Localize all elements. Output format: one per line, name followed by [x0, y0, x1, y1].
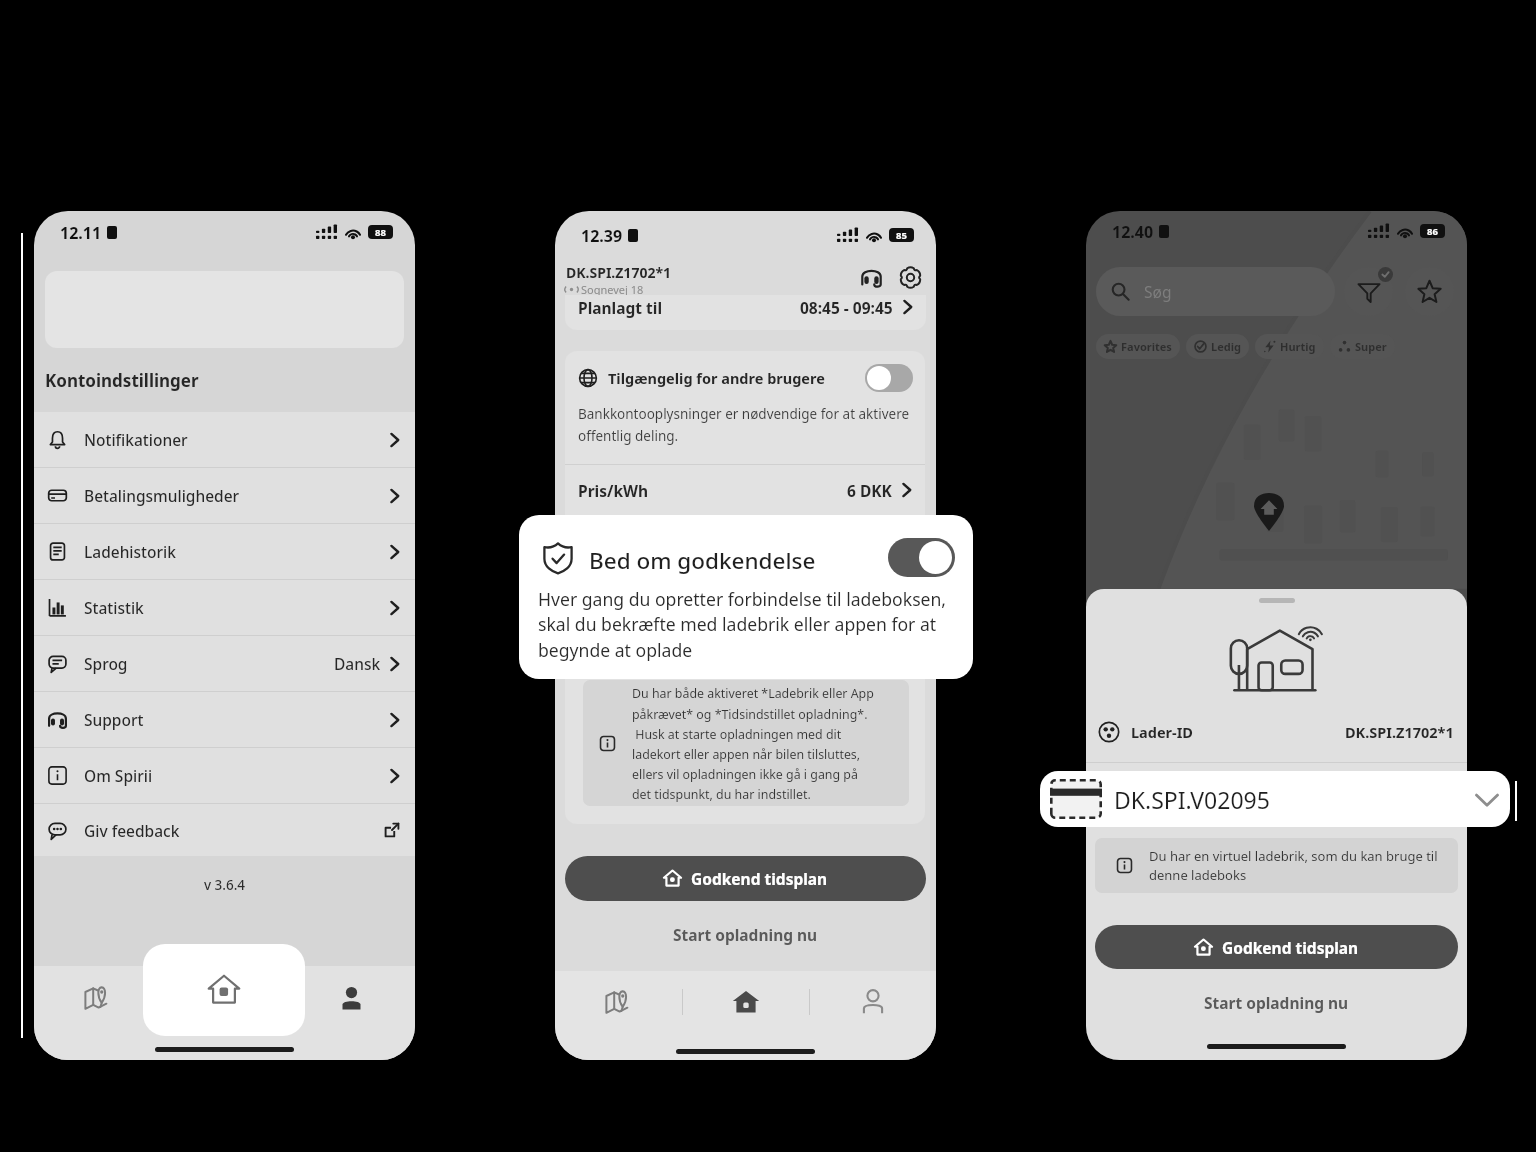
button[interactable]: Map	[34, 966, 161, 1030]
staticText: Dansk	[334, 653, 381, 674]
staticText: 08:45 - 09:45	[800, 297, 893, 318]
staticText: Hurtig	[1280, 339, 1316, 354]
staticText: DK.SPI.V02095	[1114, 784, 1270, 815]
button[interactable]: Select charge tag	[1040, 771, 1510, 827]
staticText: Kontoindstillinger	[45, 369, 199, 392]
staticText: Ladehistorik	[84, 541, 176, 562]
staticText: DK.SPI.Z1702*1	[1345, 722, 1454, 742]
button[interactable]: Ladehistorik	[34, 524, 415, 579]
button[interactable]: Betalingsmuligheder	[34, 468, 415, 523]
staticText: Ledig	[1211, 339, 1241, 354]
staticText: v 3.6.4	[34, 876, 415, 894]
staticText: Favorites	[1121, 339, 1172, 354]
button[interactable]: Super	[1330, 334, 1395, 359]
staticText: 88	[375, 226, 386, 239]
staticText: Pris/kWh	[578, 480, 649, 501]
staticText: Super	[1355, 339, 1387, 354]
staticText: Sprog	[84, 653, 128, 674]
staticText: Giv feedback	[84, 820, 180, 841]
staticText: Godkend tidsplan	[691, 868, 828, 889]
button[interactable]: Planlagt til	[565, 295, 926, 319]
staticText: Bed om godkendelse	[589, 545, 816, 576]
staticText: 12.11	[60, 222, 102, 242]
staticText: 85	[896, 229, 907, 242]
staticText: DK.SPI.Z1702*1	[566, 263, 671, 282]
staticText: Start opladning nu	[673, 924, 818, 945]
staticText: 86	[1427, 225, 1438, 238]
button[interactable]: Settings	[895, 262, 925, 292]
button[interactable]: Start opladning nu	[555, 917, 936, 951]
button[interactable]: Hurtig	[1255, 334, 1324, 359]
button[interactable]: Support	[856, 262, 886, 292]
button[interactable]: Favourites	[1405, 267, 1454, 316]
staticText: 12.40	[1112, 221, 1154, 241]
button[interactable]: Ledig	[1186, 334, 1249, 359]
button[interactable]: Godkend tidsplan	[565, 856, 926, 901]
button[interactable]: Filter	[1344, 267, 1393, 316]
button[interactable]: Notifikationer	[34, 412, 415, 467]
button[interactable]: Søg	[1096, 267, 1335, 316]
staticText: Du har både aktiveret *Ladebrik eller Ap…	[632, 685, 874, 802]
button[interactable]: Toggle	[865, 364, 913, 392]
staticText: Start opladning nu	[1204, 992, 1349, 1013]
staticText: Planlagt til	[578, 297, 663, 318]
staticText: Support	[84, 709, 144, 730]
staticText: Lader-ID	[1131, 722, 1193, 742]
staticText: Om Spirii	[84, 765, 153, 786]
button[interactable]: Home	[683, 971, 809, 1033]
button[interactable]: Om Spirii	[34, 748, 415, 803]
staticText: Du har en virtuel ladebrik, som du kan b…	[1149, 847, 1438, 884]
staticText: Betalingsmuligheder	[84, 485, 240, 506]
staticText: 12.39	[581, 225, 623, 245]
staticText: Bankkontooplysninger er nødvendige for a…	[578, 405, 910, 445]
staticText: Tilgængelig for andre brugere	[608, 368, 825, 388]
button[interactable]: Pris/kWh	[578, 465, 912, 515]
staticText: Sognevej 18	[581, 282, 644, 297]
staticText: Godkend tidsplan	[1222, 937, 1359, 958]
button[interactable]: Favorites	[1096, 334, 1180, 359]
button[interactable]: Support	[34, 692, 415, 747]
button[interactable]: Profile	[288, 966, 415, 1030]
staticText: 6 DKK	[847, 480, 892, 501]
button[interactable]: Start opladning nu	[1086, 987, 1467, 1017]
button[interactable]: Toggle approval	[888, 538, 955, 577]
button[interactable]: Statistik	[34, 580, 415, 635]
button[interactable]: Sprog	[34, 636, 415, 691]
staticText: Hver gang du opretter forbindelse til la…	[538, 587, 968, 663]
button[interactable]: Home	[143, 944, 305, 1036]
button[interactable]: Profile	[810, 971, 936, 1033]
staticText: Notifikationer	[84, 429, 188, 450]
button[interactable]: Map	[555, 971, 682, 1033]
staticText: Søg	[1144, 281, 1172, 302]
staticText: Statistik	[84, 597, 144, 618]
button[interactable]: Godkend tidsplan	[1095, 925, 1458, 969]
button[interactable]: Giv feedback	[34, 804, 415, 856]
